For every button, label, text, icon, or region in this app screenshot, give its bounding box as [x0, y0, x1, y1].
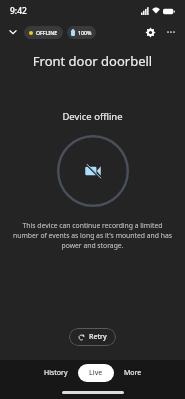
button[interactable]: Expand	[5, 24, 21, 40]
button[interactable]: 100%	[67, 26, 96, 39]
staticText: Front door doorbell	[0, 52, 185, 70]
staticText: OFFLINE	[36, 29, 58, 36]
staticText: Live	[89, 368, 103, 378]
staticText: History	[44, 368, 68, 378]
button[interactable]: Retry	[69, 328, 116, 346]
button[interactable]: Settings	[141, 23, 159, 41]
button[interactable]: More options	[162, 23, 180, 41]
staticText: More	[124, 368, 142, 378]
staticText: Retry	[89, 332, 107, 342]
button[interactable]: OFFLINE	[24, 26, 63, 39]
staticText: 100%	[78, 29, 92, 36]
button[interactable]: History	[37, 365, 75, 381]
button[interactable]: Live	[78, 364, 114, 382]
staticText: Device offline	[0, 110, 185, 123]
button[interactable]: More	[117, 365, 149, 381]
staticText: 9:42	[10, 5, 27, 17]
staticText: This device can continue recording a lim…	[12, 221, 173, 250]
